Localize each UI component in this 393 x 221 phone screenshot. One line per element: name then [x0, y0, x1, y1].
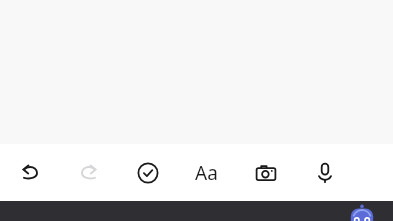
button[interactable]: Redo — [59, 144, 118, 201]
button[interactable]: Aa — [177, 144, 236, 201]
staticText: Aa — [195, 160, 218, 186]
button[interactable]: Checklist — [118, 144, 177, 201]
button[interactable]: Camera — [236, 144, 295, 201]
button[interactable]: Voice input — [295, 144, 354, 201]
button[interactable]: Assistant — [349, 204, 375, 221]
button[interactable]: Undo — [0, 144, 59, 201]
